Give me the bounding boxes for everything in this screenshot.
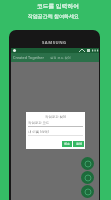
staticText: 참여 xyxy=(76,142,82,146)
staticText: 취소 xyxy=(64,142,70,146)
staticText: 내 이름 (선택) xyxy=(28,129,49,134)
button[interactable]: 참여 xyxy=(73,141,84,147)
button[interactable]: Action 2 xyxy=(81,171,94,184)
staticText: 작업공간에 참여하세요 xyxy=(27,13,79,20)
button[interactable]: 취소 xyxy=(62,141,72,147)
staticText: Created Together xyxy=(13,55,45,60)
staticText: 설정 코드 참여 xyxy=(50,56,71,60)
button[interactable]: Action 1 xyxy=(81,157,94,170)
button[interactable]: Action 3 xyxy=(81,185,94,198)
staticText: 작업공간 참여 xyxy=(45,114,67,119)
staticText: 코드를 입력하여 xyxy=(36,2,79,10)
staticText: 작업공간 코드 xyxy=(28,120,50,125)
staticText: SAMSUNG xyxy=(42,40,67,46)
